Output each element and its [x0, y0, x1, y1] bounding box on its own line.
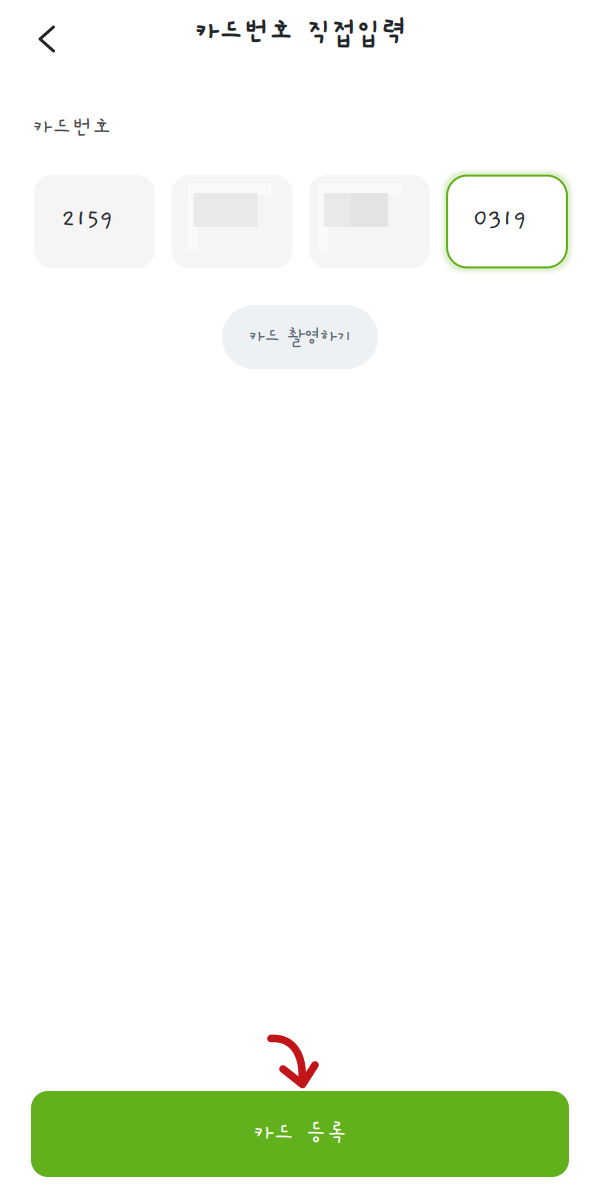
staticText: 카드 촬영하기 [248, 327, 352, 347]
button[interactable]: 카드번호 마지막 4자리 0319 [446, 175, 567, 268]
button[interactable]: 카드번호 입력 [171, 175, 292, 268]
staticText: 0319 [473, 205, 527, 232]
staticText: 카드번호 [32, 116, 112, 140]
button[interactable]: 카드번호 앞 4자리 2159 [34, 175, 155, 268]
staticText: 2159 [61, 205, 113, 232]
button[interactable]: 카드 촬영하기 [222, 305, 378, 369]
button[interactable]: 뒤로 [0, 0, 75, 66]
button[interactable]: 카드 등록 [31, 1091, 569, 1177]
staticText: 카드번호 직접입력 [193, 17, 406, 48]
staticText: 카드 등록 [252, 1121, 347, 1147]
button[interactable]: 카드번호 입력 [309, 175, 430, 268]
